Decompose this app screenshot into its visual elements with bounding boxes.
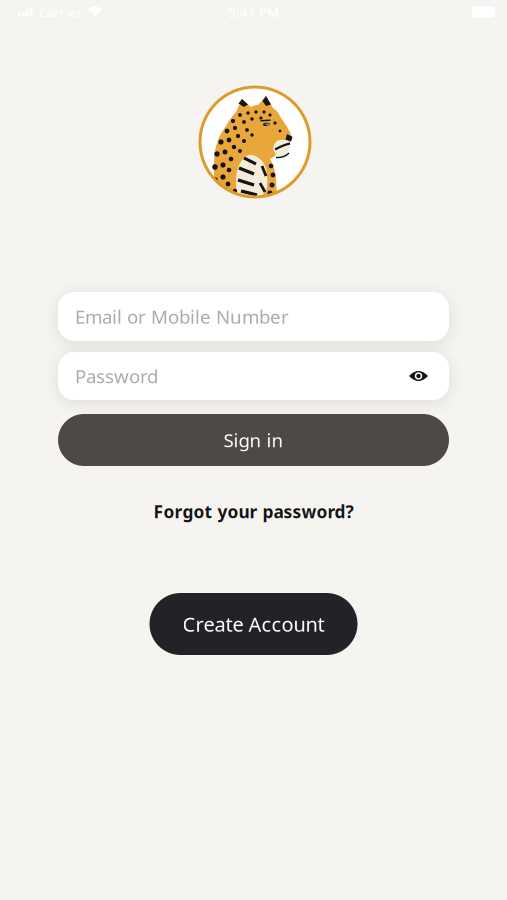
staticText: Create Account <box>182 611 324 637</box>
button[interactable]: Email or Mobile Number <box>58 292 449 341</box>
button[interactable]: Sign in <box>58 414 449 466</box>
button[interactable]: Forgot your password? <box>153 500 353 523</box>
staticText: Email or Mobile Number <box>75 304 289 329</box>
staticText: 9:41 PM <box>228 3 279 21</box>
button[interactable]: Password <box>58 352 449 400</box>
button[interactable]: Create Account <box>149 593 357 655</box>
staticText: Carrier <box>39 3 83 21</box>
staticText: Forgot your password? <box>153 500 353 523</box>
staticText: Password <box>75 364 158 388</box>
staticText: Sign in <box>223 428 283 452</box>
